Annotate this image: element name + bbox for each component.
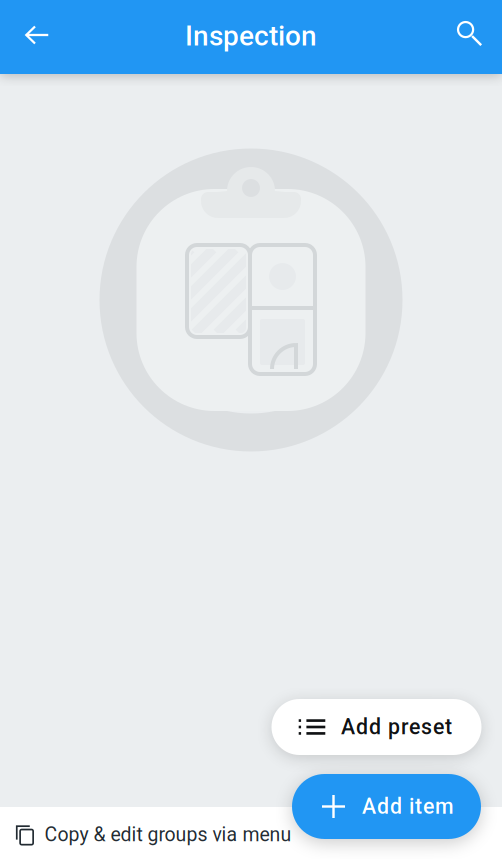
staticText: Add item [362, 794, 454, 819]
button[interactable]: Back [9, 0, 65, 72]
button[interactable]: Add preset [271, 699, 481, 755]
button[interactable]: Copy & edit groups via menu [0, 807, 502, 862]
staticText: Inspection [185, 20, 317, 52]
staticText: Copy & edit groups via menu [44, 823, 291, 846]
button[interactable]: Add item [292, 774, 481, 839]
staticText: Add preset [341, 714, 452, 739]
button[interactable]: Search [442, 0, 498, 71]
